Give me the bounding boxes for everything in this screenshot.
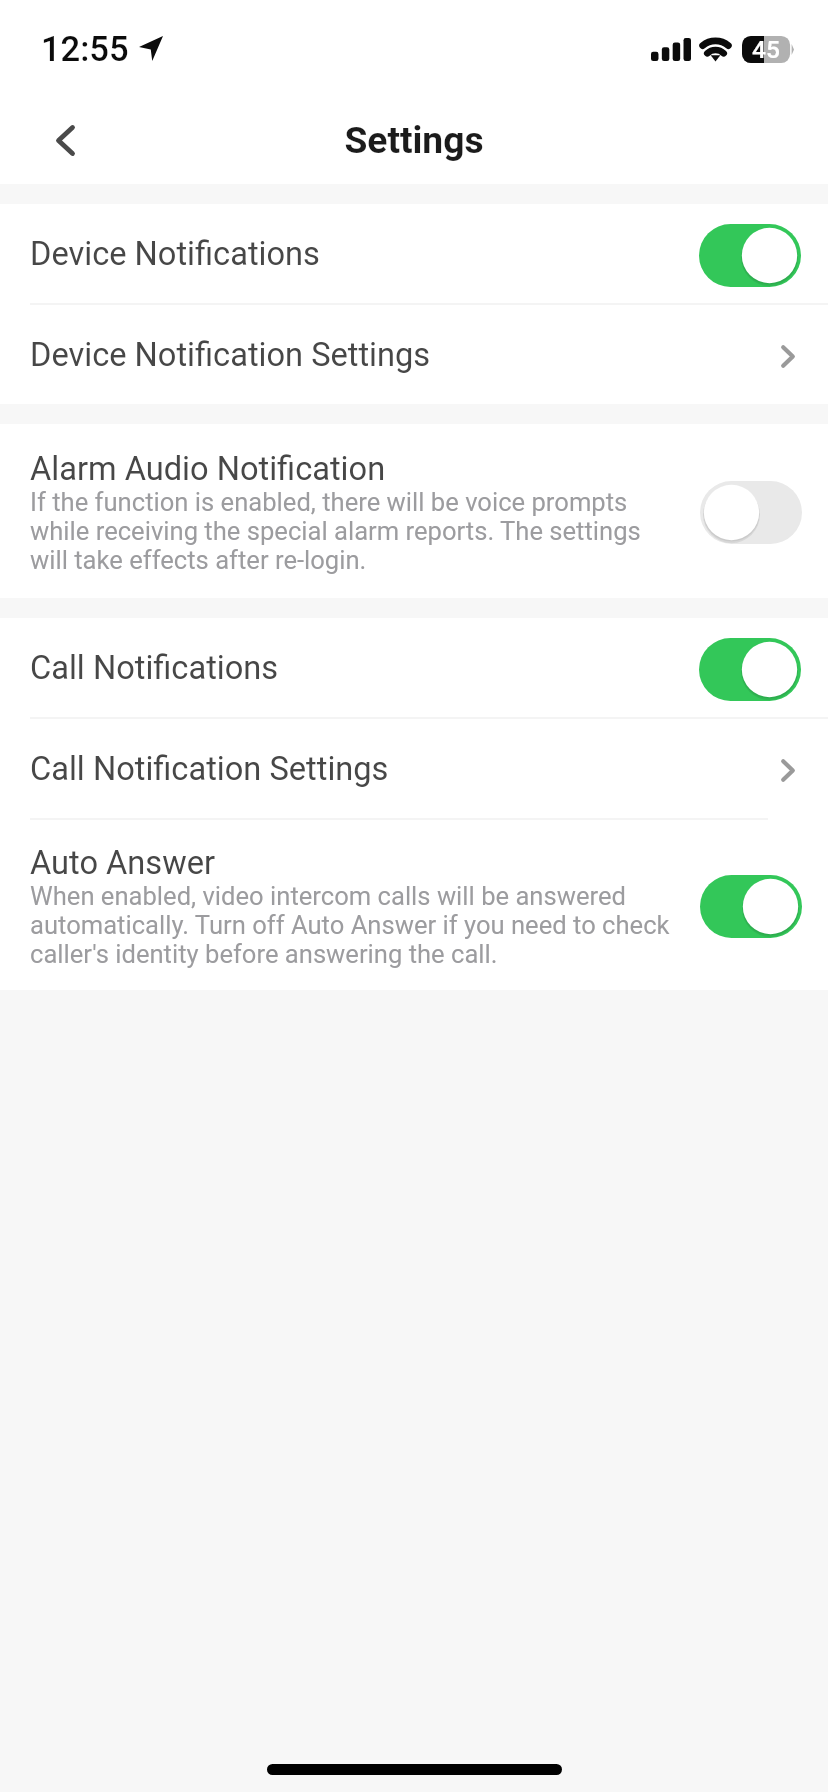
button[interactable]: Switch on — [699, 638, 801, 701]
button[interactable]: Device Notification Settings — [0, 305, 828, 404]
button[interactable]: Switch off — [700, 481, 802, 544]
staticText: If the function is enabled, there will b… — [30, 487, 678, 575]
button[interactable]: Device Notifications — [0, 204, 828, 303]
staticText: Call Notification Settings — [30, 750, 781, 788]
button[interactable]: Switch on — [699, 224, 801, 287]
staticText: Device Notification Settings — [30, 336, 781, 374]
button[interactable]: Auto Answer — [0, 820, 828, 990]
staticText: 12:55 — [41, 29, 129, 69]
button[interactable]: Switch on — [700, 875, 802, 938]
staticText: Call Notifications — [30, 649, 699, 687]
staticText: Alarm Audio Notification — [30, 450, 386, 488]
staticText: Device Notifications — [30, 235, 699, 273]
button[interactable]: Call Notifications — [0, 618, 828, 717]
button[interactable]: Alarm Audio Notification — [0, 424, 828, 598]
button[interactable]: Back — [33, 97, 97, 177]
staticText: Settings — [344, 118, 484, 162]
staticText: When enabled, video intercom calls will … — [30, 881, 678, 969]
staticText: Auto Answer — [30, 844, 215, 882]
staticText: 45 — [752, 35, 780, 64]
button[interactable]: Call Notification Settings — [0, 719, 828, 818]
